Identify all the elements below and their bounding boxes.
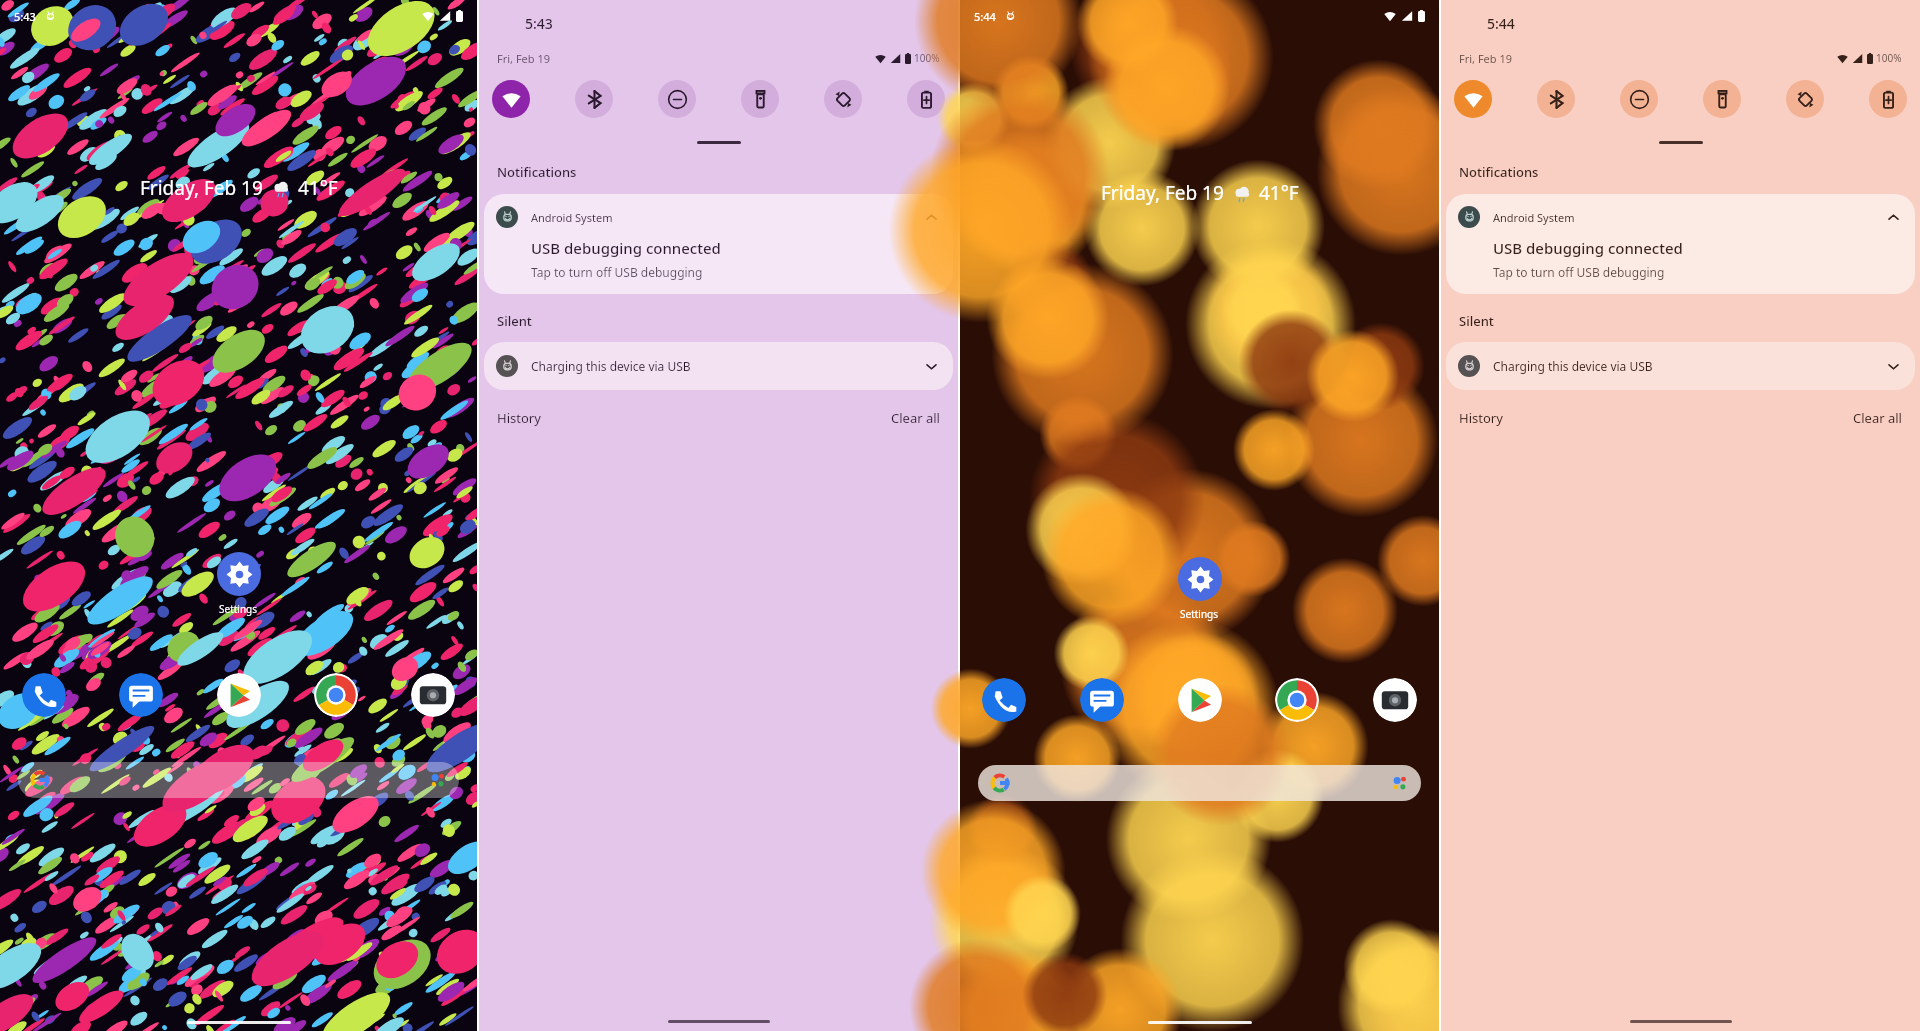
button[interactable]: Clear all bbox=[1853, 405, 1902, 431]
staticText: Android System bbox=[1493, 210, 1575, 225]
staticText: USB debugging connected bbox=[1493, 238, 1683, 258]
staticText: USB debugging connected bbox=[531, 238, 721, 258]
button[interactable]: Android System bbox=[484, 194, 953, 294]
button[interactable]: Charging this device via USB bbox=[484, 342, 953, 390]
staticText: 100% bbox=[1876, 51, 1902, 65]
button[interactable]: Camera bbox=[411, 673, 455, 717]
staticText: Friday, Feb 19 bbox=[140, 175, 263, 201]
button[interactable]: Expand bbox=[1881, 354, 1905, 378]
button[interactable]: Phone bbox=[982, 678, 1026, 722]
staticText: Friday, Feb 19 bbox=[1101, 180, 1224, 206]
button[interactable]: Collapse bbox=[1881, 205, 1905, 229]
button[interactable]: History bbox=[497, 405, 541, 431]
button[interactable]: Play Store bbox=[217, 673, 261, 717]
staticText: Notifications bbox=[1459, 163, 1539, 181]
button[interactable]: Charging this device via USB bbox=[1446, 342, 1915, 390]
button[interactable]: Battery saver bbox=[907, 80, 945, 118]
staticText: Fri, Feb 19 bbox=[1459, 51, 1513, 66]
button[interactable]: Flashlight bbox=[1703, 80, 1741, 118]
staticText: 5:43 bbox=[525, 14, 553, 33]
staticText: Settings bbox=[1180, 607, 1219, 621]
button[interactable]: Auto rotate bbox=[824, 80, 862, 118]
button[interactable]: Wi-Fi bbox=[1454, 80, 1492, 118]
button[interactable]: Do not disturb bbox=[658, 80, 696, 118]
button[interactable]: Messages bbox=[1080, 678, 1124, 722]
button[interactable]: Clear all bbox=[891, 405, 940, 431]
button[interactable]: Expand bbox=[919, 354, 943, 378]
button[interactable]: Bluetooth bbox=[1537, 80, 1575, 118]
staticText: 5:43 bbox=[14, 9, 36, 24]
staticText: Clear all bbox=[891, 409, 940, 427]
button[interactable]: Auto rotate bbox=[1786, 80, 1824, 118]
button[interactable]: Play Store bbox=[1178, 678, 1222, 722]
button[interactable]: Settings bbox=[1178, 557, 1222, 601]
button[interactable]: Flashlight bbox=[741, 80, 779, 118]
staticText: Tap to turn off USB debugging bbox=[531, 264, 703, 280]
staticText: 100% bbox=[914, 51, 940, 65]
staticText: Charging this device via USB bbox=[1493, 358, 1653, 374]
button[interactable]: Chrome bbox=[314, 673, 358, 717]
staticText: Silent bbox=[497, 312, 532, 330]
button[interactable]: Camera bbox=[1373, 678, 1417, 722]
button[interactable]: Bluetooth bbox=[575, 80, 613, 118]
staticText: Tap to turn off USB debugging bbox=[1493, 264, 1665, 280]
staticText: 41°F bbox=[298, 175, 338, 201]
staticText: Settings bbox=[219, 602, 258, 616]
staticText: History bbox=[1459, 409, 1503, 427]
button[interactable]: Wi-Fi bbox=[492, 80, 530, 118]
button[interactable]: Chrome bbox=[1275, 678, 1319, 722]
staticText: Silent bbox=[1459, 312, 1494, 330]
button[interactable]: Phone bbox=[22, 673, 66, 717]
staticText: Android System bbox=[531, 210, 613, 225]
staticText: History bbox=[497, 409, 541, 427]
staticText: Clear all bbox=[1853, 409, 1902, 427]
button[interactable]: Messages bbox=[119, 673, 163, 717]
staticText: 41°F bbox=[1259, 180, 1299, 206]
button[interactable]: Search bbox=[978, 765, 1421, 801]
staticText: Charging this device via USB bbox=[531, 358, 691, 374]
button[interactable]: Settings bbox=[217, 552, 261, 596]
button[interactable]: History bbox=[1459, 405, 1503, 431]
button[interactable]: Collapse bbox=[919, 205, 943, 229]
button[interactable]: Do not disturb bbox=[1620, 80, 1658, 118]
staticText: 5:44 bbox=[974, 9, 996, 24]
button[interactable]: Search bbox=[18, 762, 459, 798]
button[interactable]: Android System bbox=[1446, 194, 1915, 294]
button[interactable]: Battery saver bbox=[1869, 80, 1907, 118]
staticText: Fri, Feb 19 bbox=[497, 51, 551, 66]
staticText: 5:44 bbox=[1487, 14, 1515, 33]
staticText: Notifications bbox=[497, 163, 577, 181]
